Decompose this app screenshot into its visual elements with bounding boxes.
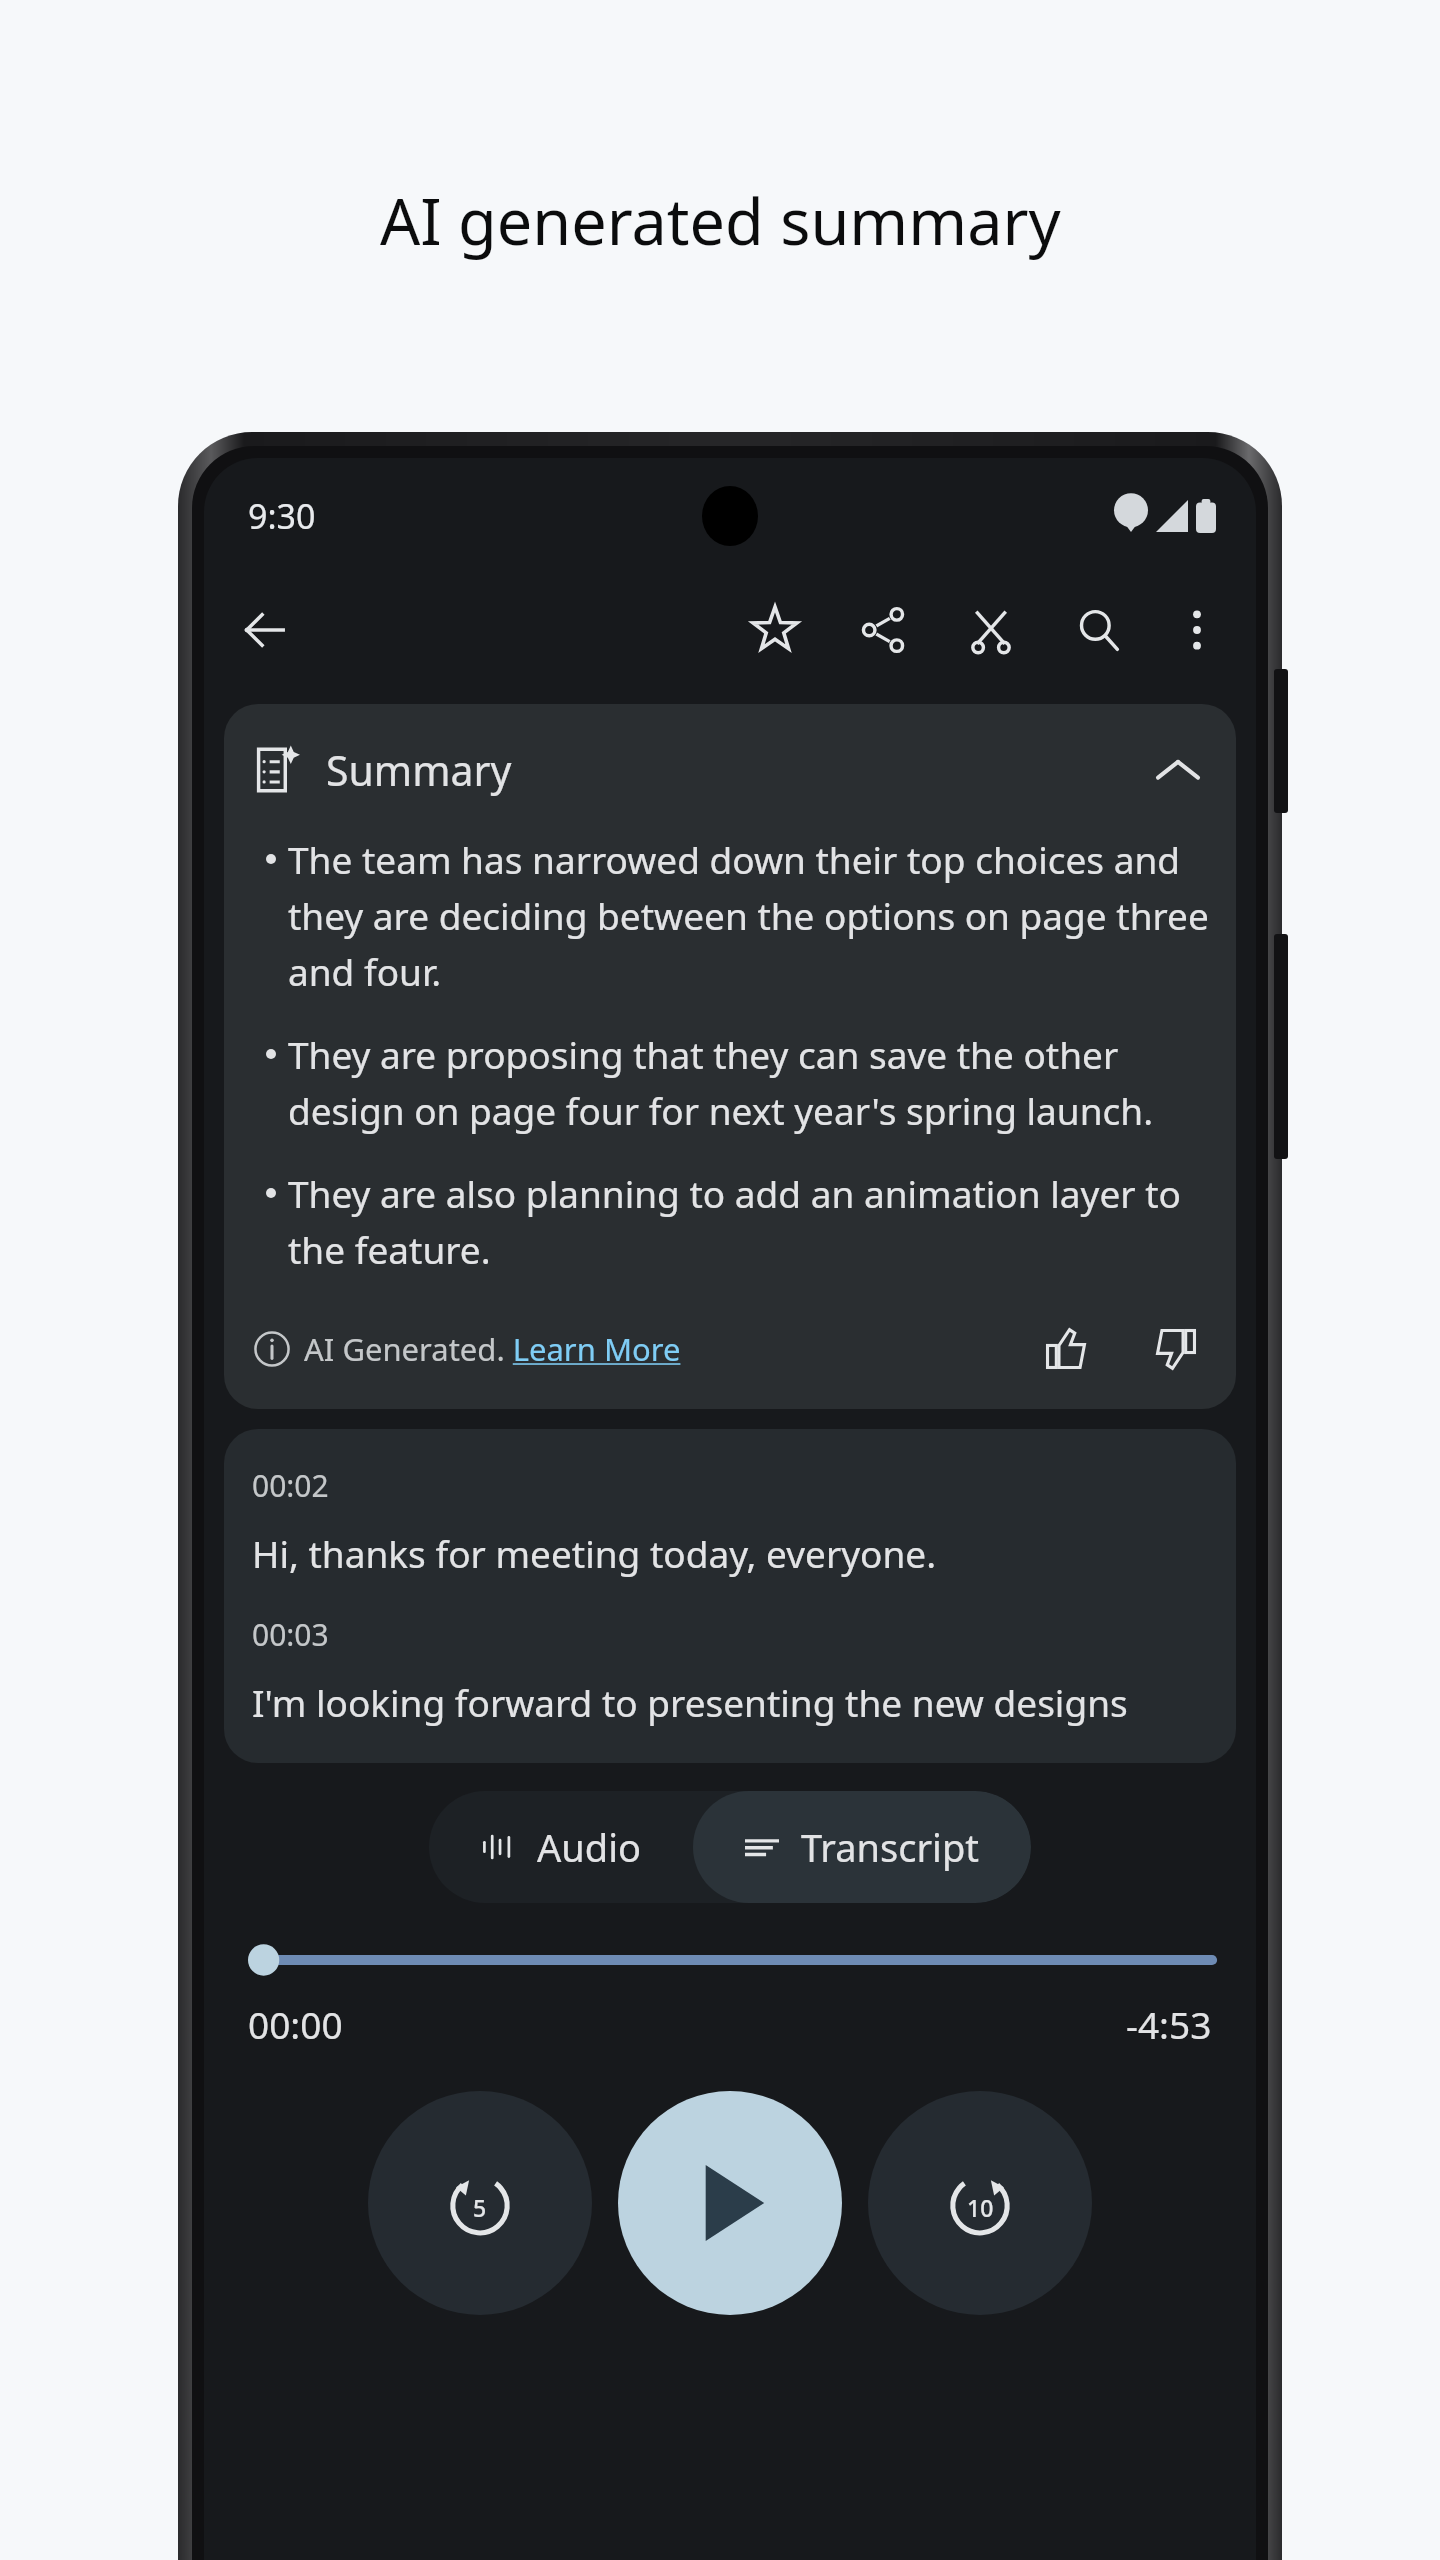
button[interactable]: Collapse [1146, 738, 1210, 802]
staticText: The team has narrowed down their top cho… [288, 834, 1210, 997]
button[interactable]: 00:02 [224, 1429, 1236, 1763]
staticText: 00:02 [252, 1465, 329, 1506]
button[interactable]: Back [226, 591, 304, 669]
button[interactable]: Forward 10 seconds [868, 2091, 1092, 2315]
button[interactable]: Rewind 5 seconds [368, 2091, 592, 2315]
staticText: 00:03 [252, 1614, 329, 1655]
button[interactable]: Audio [429, 1791, 693, 1903]
staticText: 00:00 [248, 1999, 343, 2049]
button[interactable]: AI Generated. Learn More [304, 1328, 681, 1370]
staticText: I'm looking forward to presenting the ne… [252, 1677, 1128, 1727]
button[interactable]: Summary [224, 704, 1236, 1409]
staticText: Audio [537, 1821, 641, 1873]
staticText: 5 [473, 2192, 487, 2223]
staticText: AI generated summary [380, 178, 1061, 264]
staticText: Summary [326, 742, 512, 798]
staticText: Hi, thanks for meeting today, everyone. [252, 1528, 937, 1578]
staticText: 9:30 [248, 493, 316, 539]
staticText: Transcript [801, 1821, 979, 1873]
button[interactable]: Star [738, 593, 812, 667]
button[interactable]: Share [846, 593, 920, 667]
staticText: 10 [967, 2192, 994, 2223]
button[interactable]: Play [618, 2091, 842, 2315]
button[interactable]: Thumbs up [1032, 1315, 1100, 1383]
staticText: They are also planning to add an animati… [288, 1168, 1210, 1275]
button[interactable]: More options [1160, 593, 1234, 667]
button[interactable]: Thumbs down [1142, 1315, 1210, 1383]
staticText: They are proposing that they can save th… [288, 1029, 1210, 1136]
staticText: -4:53 [1126, 1999, 1212, 2049]
button[interactable]: Search [1062, 593, 1136, 667]
button[interactable] [248, 1943, 1212, 1977]
button[interactable]: Transcript [693, 1791, 1031, 1903]
button[interactable]: Trim [954, 593, 1028, 667]
